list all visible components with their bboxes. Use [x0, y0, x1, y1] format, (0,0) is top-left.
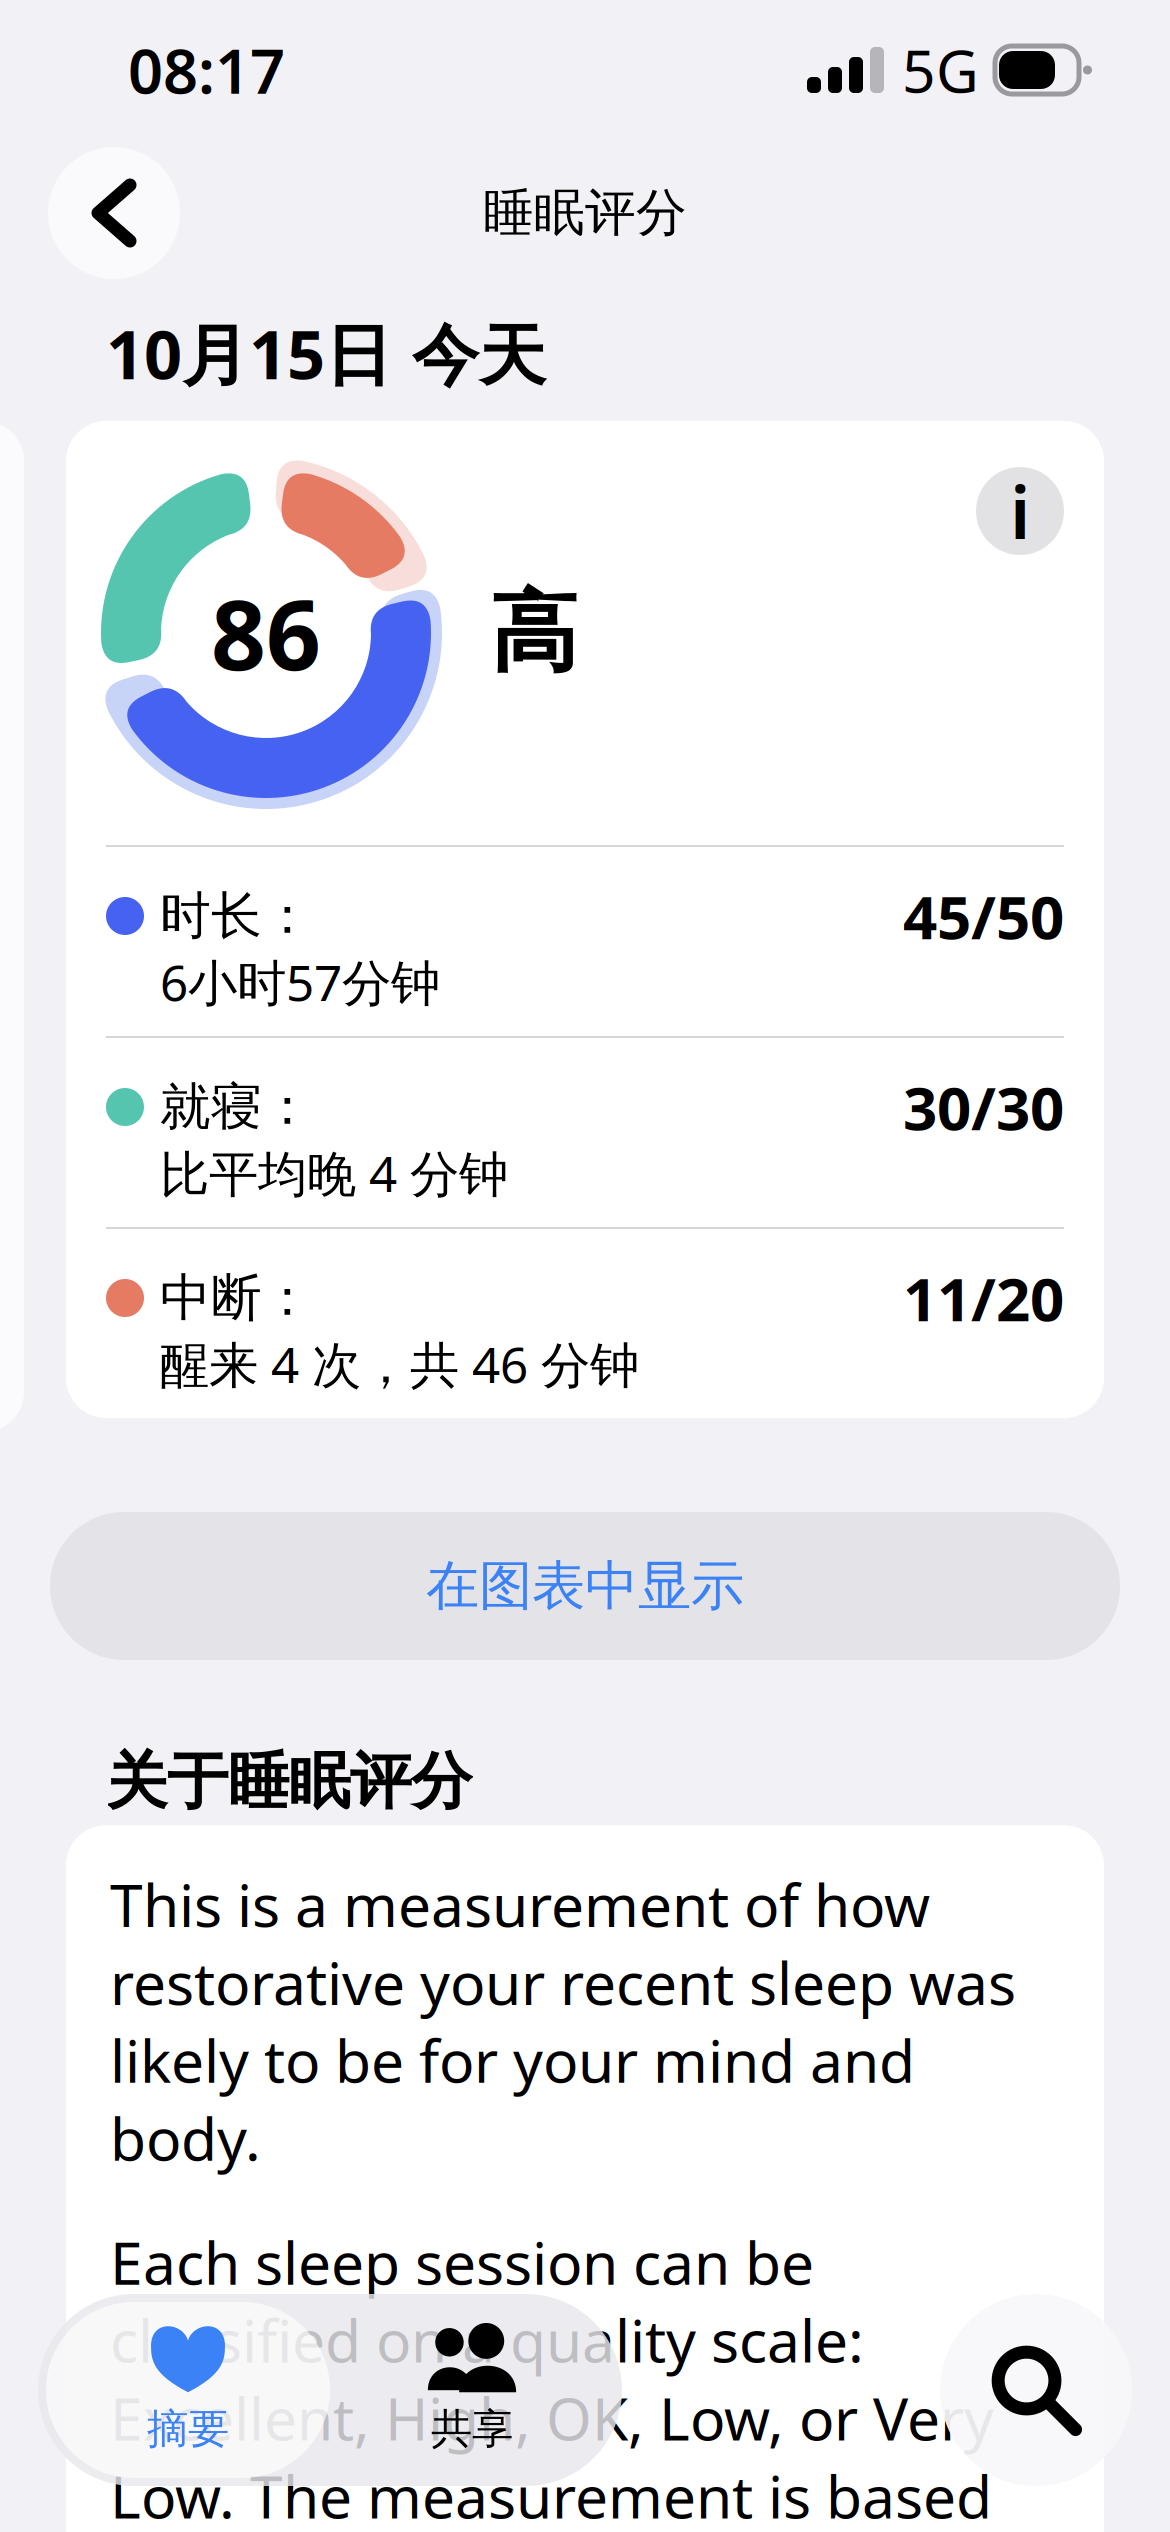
button[interactable]: 摘要: [46, 2302, 330, 2478]
staticText: 就寝：: [160, 1076, 313, 1138]
staticText: Each sleep session can be classified on …: [110, 2223, 1041, 2532]
button[interactable]: Back: [48, 147, 180, 279]
staticText: 共享: [431, 2404, 513, 2454]
staticText: 关于睡眠评分: [106, 1744, 472, 1819]
button[interactable]: 共享: [330, 2302, 614, 2478]
staticText: 时长：: [160, 885, 313, 947]
staticText: 睡眠评分: [483, 182, 687, 244]
staticText: 11/20: [903, 1258, 1064, 1338]
staticText: 10月15日 今天: [106, 309, 546, 398]
button[interactable]: Info: [976, 467, 1064, 555]
staticText: 45/50: [903, 876, 1064, 956]
staticText: 摘要: [147, 2404, 229, 2454]
button[interactable]: 在图表中显示: [50, 1512, 1120, 1660]
staticText: 86: [211, 569, 321, 697]
staticText: 醒来 4 次，共 46 分钟: [160, 1331, 639, 1396]
staticText: 6小时57分钟: [160, 949, 440, 1014]
staticText: i: [1010, 463, 1030, 559]
button[interactable]: Search: [940, 2294, 1132, 2486]
staticText: This is a measurement of how restorative…: [110, 1865, 1016, 2177]
staticText: 30/30: [903, 1067, 1064, 1147]
staticText: 在图表中显示: [426, 1553, 744, 1619]
staticText: 比平均晚 4 分钟: [160, 1140, 508, 1205]
staticText: 08:17: [128, 29, 285, 111]
staticText: 5G: [902, 31, 979, 109]
staticText: 高: [490, 579, 578, 687]
staticText: 中断：: [160, 1267, 313, 1329]
